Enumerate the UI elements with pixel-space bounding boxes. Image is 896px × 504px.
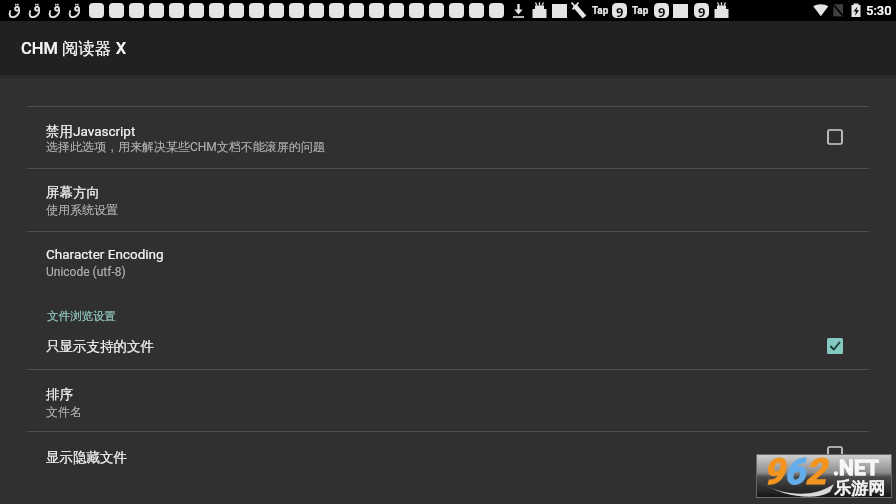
button[interactable]: 禁用Javascript [0,106,896,168]
staticText: 使用系统设置 [46,202,118,217]
staticText: ق [8,0,28,18]
staticText: ق [68,0,88,18]
staticText: CHM 阅读器 X [21,38,127,59]
staticText: 5:30 [866,3,892,18]
staticText: 排序 [46,386,73,403]
staticText: 屏幕方向 [46,184,100,201]
staticText: 9 [616,3,624,18]
staticText: 6 [784,451,805,493]
staticText: Tap [632,5,649,17]
button[interactable]: Character Encoding [0,231,896,294]
button[interactable]: Unchecked option [819,121,851,153]
button[interactable]: 排序 [0,369,896,431]
staticText: 禁用Javascript [46,123,136,140]
staticText: 文件浏览设置 [47,309,116,323]
button[interactable]: Checked option [819,330,851,362]
staticText: ق [48,0,68,18]
staticText: ق [28,0,48,18]
staticText: 2 [805,451,826,493]
staticText: 选择此选项，用来解决某些CHM文档不能滚屏的问题 [46,139,325,154]
staticText: 文件名 [46,404,82,419]
button[interactable]: 只显示支持的文件 [0,294,896,369]
button[interactable]: 屏幕方向 [0,168,896,231]
staticText: 只显示支持的文件 [46,338,154,355]
staticText: Character Encoding [46,246,164,262]
staticText: 9 [763,451,784,493]
staticText: .NET [833,456,879,481]
staticText: Unicode (utf-8) [46,265,126,279]
button[interactable]: 显示隐藏文件 [0,431,896,493]
staticText: 乐游网 [834,478,885,499]
staticText: 9 [698,3,706,18]
staticText: 显示隐藏文件 [46,449,127,466]
staticText: 9 [658,3,666,18]
staticText: Tap [592,5,609,17]
button[interactable]: Unchecked option [819,438,851,470]
